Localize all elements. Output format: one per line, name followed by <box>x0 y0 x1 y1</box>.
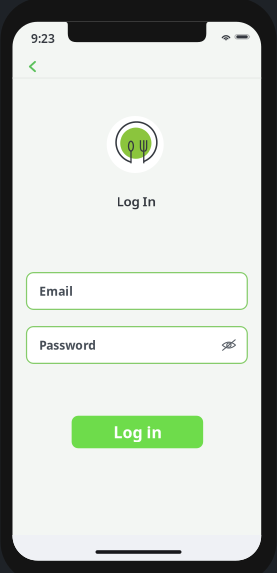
staticText: Password <box>39 337 96 353</box>
staticText: Email <box>39 283 73 299</box>
button[interactable]: Log in <box>72 416 203 448</box>
button[interactable]: Back <box>17 54 47 80</box>
staticText: 9:23 <box>31 30 55 46</box>
staticText: Log In <box>116 192 156 210</box>
staticText: Log in <box>113 421 161 443</box>
